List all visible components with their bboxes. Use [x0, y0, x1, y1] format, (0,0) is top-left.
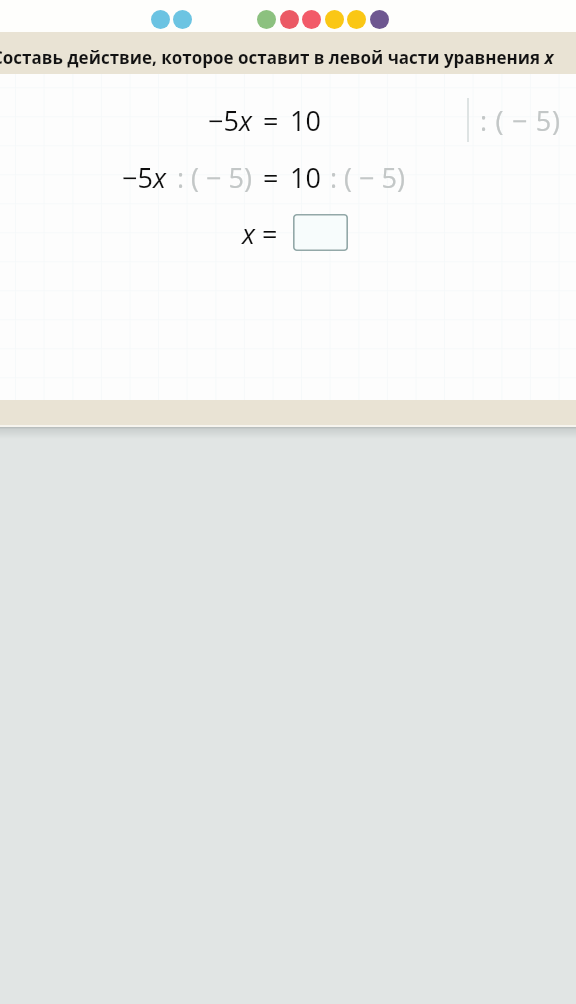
button[interactable]: Progress step 8 [370, 10, 389, 29]
button[interactable]: Progress step 5 [302, 10, 321, 29]
staticText: = [262, 215, 278, 252]
button[interactable]: Progress step 7 [347, 10, 366, 29]
staticText: x [242, 215, 255, 252]
staticText: 10 [290, 159, 321, 196]
staticText: : ( − 5) [480, 102, 561, 139]
button[interactable]: Answer input field [293, 214, 348, 251]
staticText: Составь действие, которое оставит в лево… [0, 46, 554, 69]
staticText: −5x [122, 159, 166, 196]
button[interactable]: Progress step 3 [257, 10, 276, 29]
staticText: : ( − 5) [177, 159, 252, 196]
staticText: 10 [290, 102, 321, 139]
button[interactable]: Progress step 4 [280, 10, 299, 29]
staticText: −5x [208, 102, 252, 139]
button[interactable]: Progress step 2 [173, 10, 192, 29]
staticText: = [263, 159, 279, 196]
staticText: : ( − 5) [330, 159, 405, 196]
button[interactable]: Progress step 6 [325, 10, 344, 29]
staticText: = [263, 102, 279, 139]
button[interactable]: Progress step 1 [151, 10, 170, 29]
